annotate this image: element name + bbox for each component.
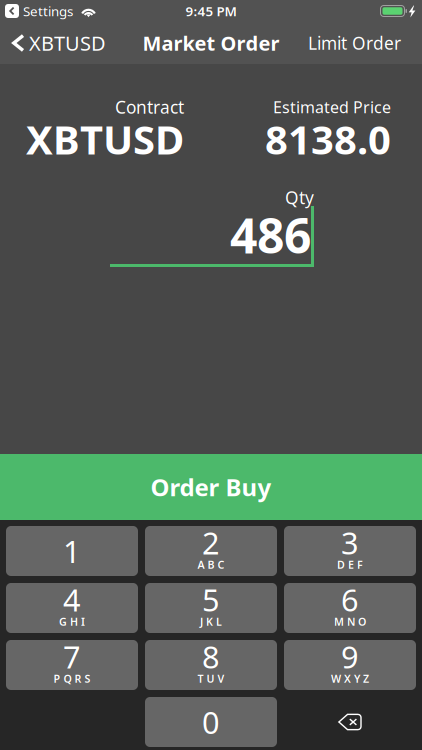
staticText: 486: [230, 203, 311, 267]
staticText: 7: [63, 636, 81, 677]
staticText: 2: [202, 522, 220, 563]
staticText: Order Buy: [150, 471, 271, 503]
staticText: 8: [202, 636, 220, 677]
button[interactable]: 9: [284, 640, 416, 690]
staticText: 1: [63, 531, 81, 571]
staticText: D E F: [337, 557, 363, 572]
staticText: 6: [341, 579, 359, 620]
staticText: Settings: [23, 2, 73, 20]
staticText: Limit Order: [308, 31, 401, 54]
button[interactable]: 0: [145, 697, 277, 747]
staticText: Qty: [285, 186, 314, 209]
button[interactable]: 2: [145, 526, 277, 576]
staticText: M N O: [334, 614, 366, 629]
staticText: 4: [63, 579, 81, 620]
staticText: 8138.0: [265, 112, 391, 165]
staticText: 3: [341, 522, 359, 563]
staticText: J K L: [200, 614, 222, 629]
staticText: P Q R S: [53, 671, 90, 686]
staticText: 5: [202, 579, 220, 620]
staticText: Market Order: [142, 30, 279, 56]
button[interactable]: Qty: [110, 189, 314, 267]
staticText: G H I: [59, 614, 85, 629]
button[interactable]: 8: [145, 640, 277, 690]
button[interactable]: Settings: [5, 2, 73, 20]
button[interactable]: 6: [284, 583, 416, 633]
staticText: XBTUSD: [29, 30, 106, 56]
staticText: A B C: [197, 557, 224, 572]
staticText: W X Y Z: [331, 671, 369, 686]
button[interactable]: 7: [6, 640, 138, 690]
button[interactable]: XBTUSD: [0, 20, 106, 66]
staticText: Contract: [115, 95, 184, 118]
button[interactable]: Delete: [284, 697, 416, 747]
staticText: 0: [202, 702, 220, 742]
button[interactable]: 4: [6, 583, 138, 633]
button[interactable]: 1: [6, 526, 138, 576]
staticText: 9: [341, 636, 359, 677]
staticText: XBTUSD: [26, 112, 184, 165]
staticText: Estimated Price: [273, 96, 391, 118]
button[interactable]: 3: [284, 526, 416, 576]
button[interactable]: Order Buy: [0, 454, 422, 520]
staticText: 9:45 PM: [185, 2, 236, 20]
button[interactable]: Limit Order: [308, 21, 422, 64]
staticText: T U V: [197, 671, 224, 686]
button[interactable]: 5: [145, 583, 277, 633]
